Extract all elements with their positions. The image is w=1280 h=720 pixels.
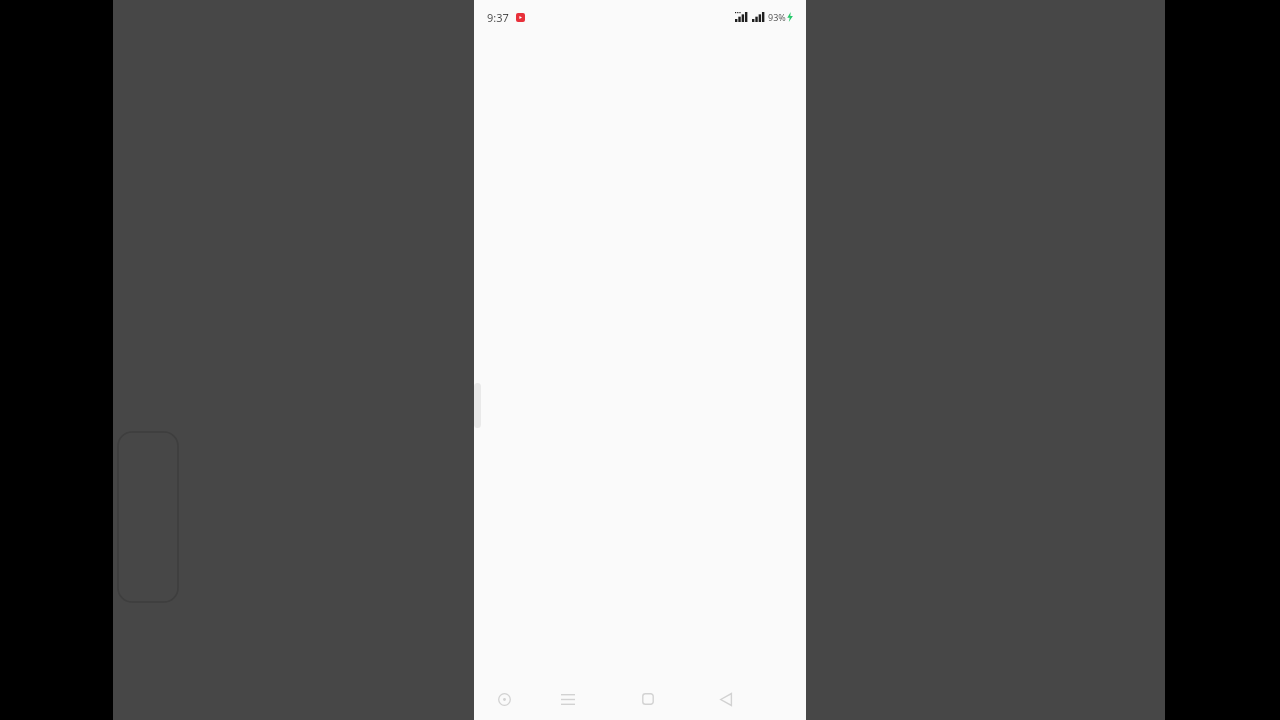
staticText: 93% [768, 11, 786, 23]
button[interactable]: Assistant [487, 682, 521, 716]
staticText: 9:37 [487, 10, 509, 25]
button[interactable]: Back [709, 682, 743, 716]
button[interactable]: Menu [551, 682, 585, 716]
button[interactable]: Home [631, 682, 665, 716]
